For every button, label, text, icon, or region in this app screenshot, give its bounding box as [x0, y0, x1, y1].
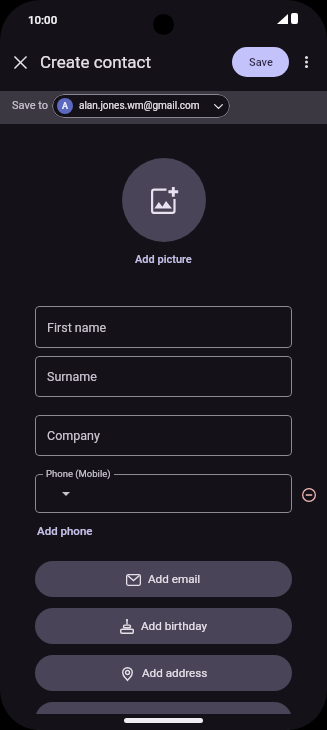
- staticText: 10:00: [28, 13, 58, 26]
- button[interactable]: [35, 474, 292, 513]
- button[interactable]: Add phone: [31, 521, 99, 540]
- button[interactable]: Add website: [35, 702, 292, 730]
- button[interactable]: More options: [291, 46, 322, 77]
- button[interactable]: A: [52, 94, 230, 118]
- staticText: Company: [47, 428, 100, 443]
- staticText: alan.jones.wm@gmail.com: [79, 100, 200, 112]
- staticText: First name: [47, 320, 107, 335]
- staticText: Add website: [142, 713, 207, 727]
- button[interactable]: Close: [4, 46, 36, 78]
- button[interactable]: Add picture: [122, 158, 206, 242]
- staticText: Create contact: [40, 52, 151, 72]
- staticText: Phone (Mobile): [46, 468, 111, 479]
- staticText: Add birthday: [141, 619, 208, 633]
- button[interactable]: Add birthday: [35, 608, 292, 644]
- button[interactable]: Add email: [35, 561, 292, 597]
- staticText: Add picture: [135, 253, 192, 266]
- staticText: Save: [249, 56, 273, 69]
- staticText: A: [62, 101, 68, 112]
- staticText: Surname: [47, 369, 97, 384]
- button[interactable]: Company: [35, 415, 292, 456]
- staticText: Add address: [142, 666, 208, 680]
- staticText: Add email: [148, 572, 201, 586]
- button[interactable]: Add picture: [129, 251, 198, 268]
- button[interactable]: Save: [232, 47, 289, 77]
- staticText: Save to: [12, 99, 49, 112]
- button[interactable]: First name: [35, 306, 292, 348]
- button[interactable]: Remove phone: [296, 482, 322, 508]
- button[interactable]: Surname: [35, 356, 292, 397]
- button[interactable]: Add address: [35, 655, 292, 691]
- staticText: Add phone: [37, 524, 93, 537]
